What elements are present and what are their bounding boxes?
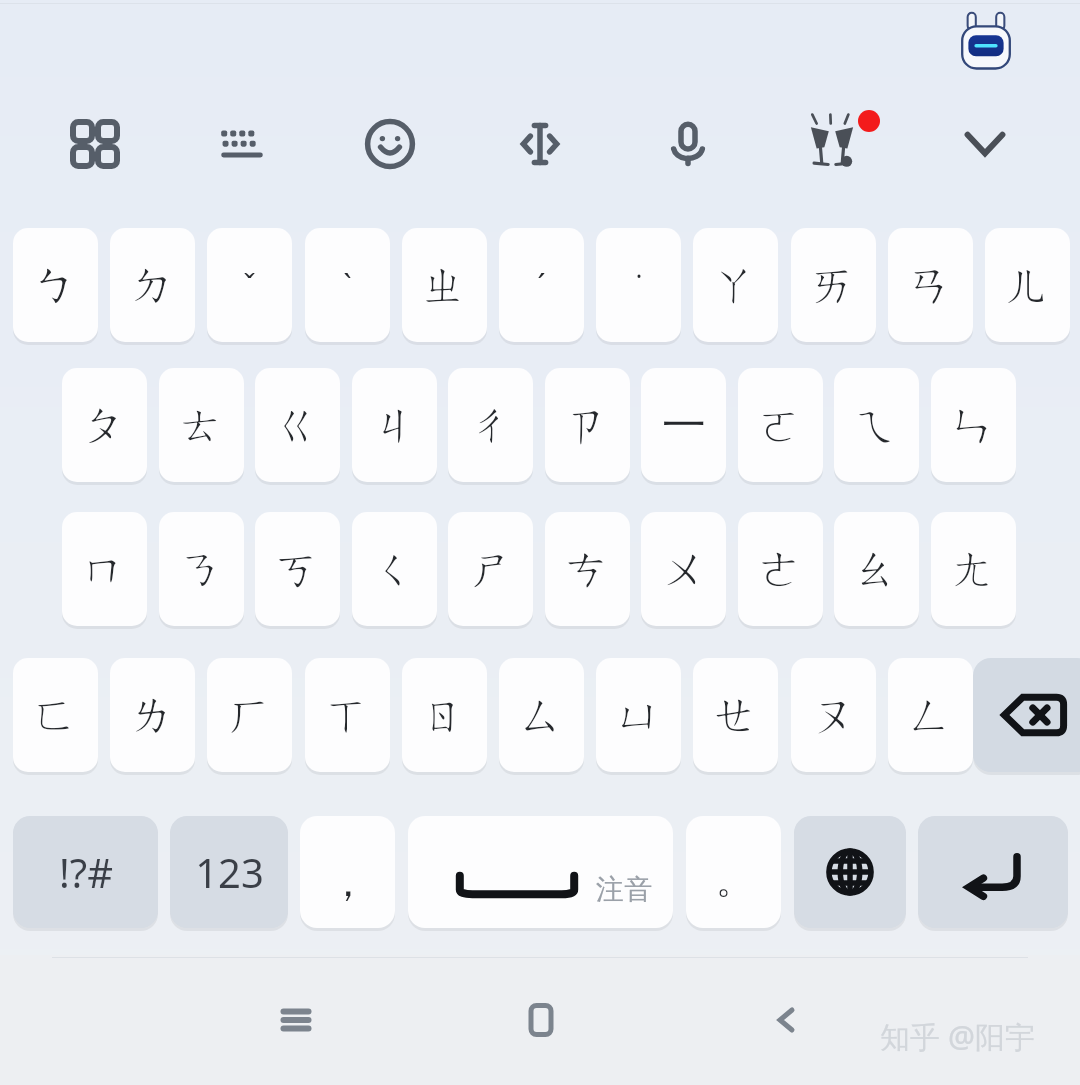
- staticText: ㄊ: [179, 398, 224, 453]
- button[interactable]: Keyboard layout: [205, 108, 279, 180]
- staticText: ㄩ: [616, 688, 661, 743]
- button[interactable]: Enter: [918, 816, 1068, 928]
- button[interactable]: ㄎ: [255, 512, 340, 626]
- button[interactable]: Move cursor: [503, 108, 577, 180]
- button[interactable]: ㄌ: [110, 658, 195, 772]
- staticText: ㄝ: [713, 688, 758, 743]
- button[interactable]: ㄕ: [448, 512, 533, 626]
- button[interactable]: Voice input: [651, 108, 725, 180]
- staticText: ㄍ: [275, 398, 320, 453]
- button[interactable]: ㄣ: [931, 368, 1016, 482]
- staticText: ㄐ: [372, 398, 417, 453]
- button[interactable]: ㄜ: [738, 512, 823, 626]
- button[interactable]: ㄟ: [834, 368, 919, 482]
- button[interactable]: ㄊ: [159, 368, 244, 482]
- staticText: ㄦ: [1005, 258, 1050, 313]
- staticText: ㄌ: [130, 688, 175, 743]
- button[interactable]: ㄗ: [545, 368, 630, 482]
- staticText: 注音: [596, 872, 652, 907]
- staticText: ㄤ: [951, 542, 996, 597]
- staticText: ˋ: [343, 265, 352, 306]
- button[interactable]: 123: [170, 816, 288, 928]
- button[interactable]: Space: [408, 816, 673, 928]
- button[interactable]: Backspace: [973, 658, 1080, 772]
- button[interactable]: ㄐ: [352, 368, 437, 482]
- button[interactable]: ㄦ: [985, 228, 1070, 342]
- button[interactable]: ㄠ: [834, 512, 919, 626]
- button[interactable]: ㄙ: [499, 658, 584, 772]
- button[interactable]: ㄓ: [402, 228, 487, 342]
- button[interactable]: ㄏ: [207, 658, 292, 772]
- staticText: !?#: [59, 845, 113, 899]
- button[interactable]: ㄩ: [596, 658, 681, 772]
- button[interactable]: ˇ: [207, 228, 292, 342]
- button[interactable]: ㄋ: [159, 512, 244, 626]
- staticText: ㄒ: [325, 688, 370, 743]
- staticText: ㄎ: [275, 542, 320, 597]
- button[interactable]: ㄨ: [641, 512, 726, 626]
- staticText: ㄋ: [179, 542, 224, 597]
- button[interactable]: ㄘ: [545, 512, 630, 626]
- staticText: 知乎 @阳宇: [880, 1016, 1035, 1057]
- button[interactable]: Back: [736, 975, 836, 1065]
- button[interactable]: ㄚ: [693, 228, 778, 342]
- button[interactable]: ㄡ: [791, 658, 876, 772]
- staticText: ˇ: [243, 265, 256, 306]
- staticText: ㄑ: [372, 542, 417, 597]
- staticText: ㄢ: [908, 258, 953, 313]
- staticText: ㄡ: [811, 688, 856, 743]
- staticText: ㄇ: [82, 542, 127, 597]
- button[interactable]: ㄝ: [693, 658, 778, 772]
- button[interactable]: ˋ: [305, 228, 390, 342]
- staticText: 一: [662, 398, 706, 453]
- button[interactable]: ㄅ: [13, 228, 98, 342]
- staticText: ㄔ: [468, 398, 513, 453]
- button[interactable]: ㄢ: [888, 228, 973, 342]
- staticText: ㄟ: [854, 398, 899, 453]
- button[interactable]: ㄍ: [255, 368, 340, 482]
- staticText: ㄓ: [422, 258, 467, 313]
- button[interactable]: ㄔ: [448, 368, 533, 482]
- button[interactable]: ㄞ: [791, 228, 876, 342]
- button[interactable]: Hide keyboard: [948, 108, 1022, 180]
- button[interactable]: Apps: [58, 108, 132, 180]
- button[interactable]: ˙: [596, 228, 681, 342]
- staticText: ㄕ: [468, 542, 513, 597]
- button[interactable]: Switch language: [794, 816, 906, 928]
- button[interactable]: ˊ: [499, 228, 584, 342]
- staticText: ˊ: [537, 265, 546, 306]
- button[interactable]: Assistant: [950, 8, 1022, 80]
- button[interactable]: ㄥ: [888, 658, 973, 772]
- staticText: ㄆ: [82, 398, 127, 453]
- button[interactable]: ㄉ: [110, 228, 195, 342]
- staticText: ㄈ: [33, 688, 78, 743]
- staticText: ㄙ: [519, 688, 564, 743]
- staticText: ㄛ: [758, 398, 803, 453]
- button[interactable]: !?#: [13, 816, 158, 928]
- button[interactable]: ㄤ: [931, 512, 1016, 626]
- button[interactable]: Recent apps: [246, 975, 346, 1065]
- staticText: ㄖ: [422, 688, 467, 743]
- button[interactable]: ㄖ: [402, 658, 487, 772]
- staticText: 。: [716, 858, 752, 903]
- button[interactable]: 一: [641, 368, 726, 482]
- staticText: 123: [195, 845, 264, 899]
- button[interactable]: ㄇ: [62, 512, 147, 626]
- button[interactable]: ㄈ: [13, 658, 98, 772]
- staticText: ㄥ: [908, 688, 953, 743]
- button[interactable]: Home: [491, 975, 591, 1065]
- button[interactable]: ，: [300, 816, 395, 928]
- button[interactable]: 。: [686, 816, 781, 928]
- button[interactable]: ㄛ: [738, 368, 823, 482]
- staticText: ㄜ: [758, 542, 803, 597]
- staticText: ㄅ: [33, 258, 78, 313]
- staticText: ㄉ: [130, 258, 175, 313]
- staticText: ，: [328, 857, 368, 907]
- button[interactable]: ㄆ: [62, 368, 147, 482]
- staticText: ㄣ: [951, 398, 996, 453]
- button[interactable]: Stickers: [796, 108, 880, 180]
- button[interactable]: ㄒ: [305, 658, 390, 772]
- button[interactable]: Emoji: [353, 108, 427, 180]
- button[interactable]: ㄑ: [352, 512, 437, 626]
- staticText: ㄚ: [713, 258, 758, 313]
